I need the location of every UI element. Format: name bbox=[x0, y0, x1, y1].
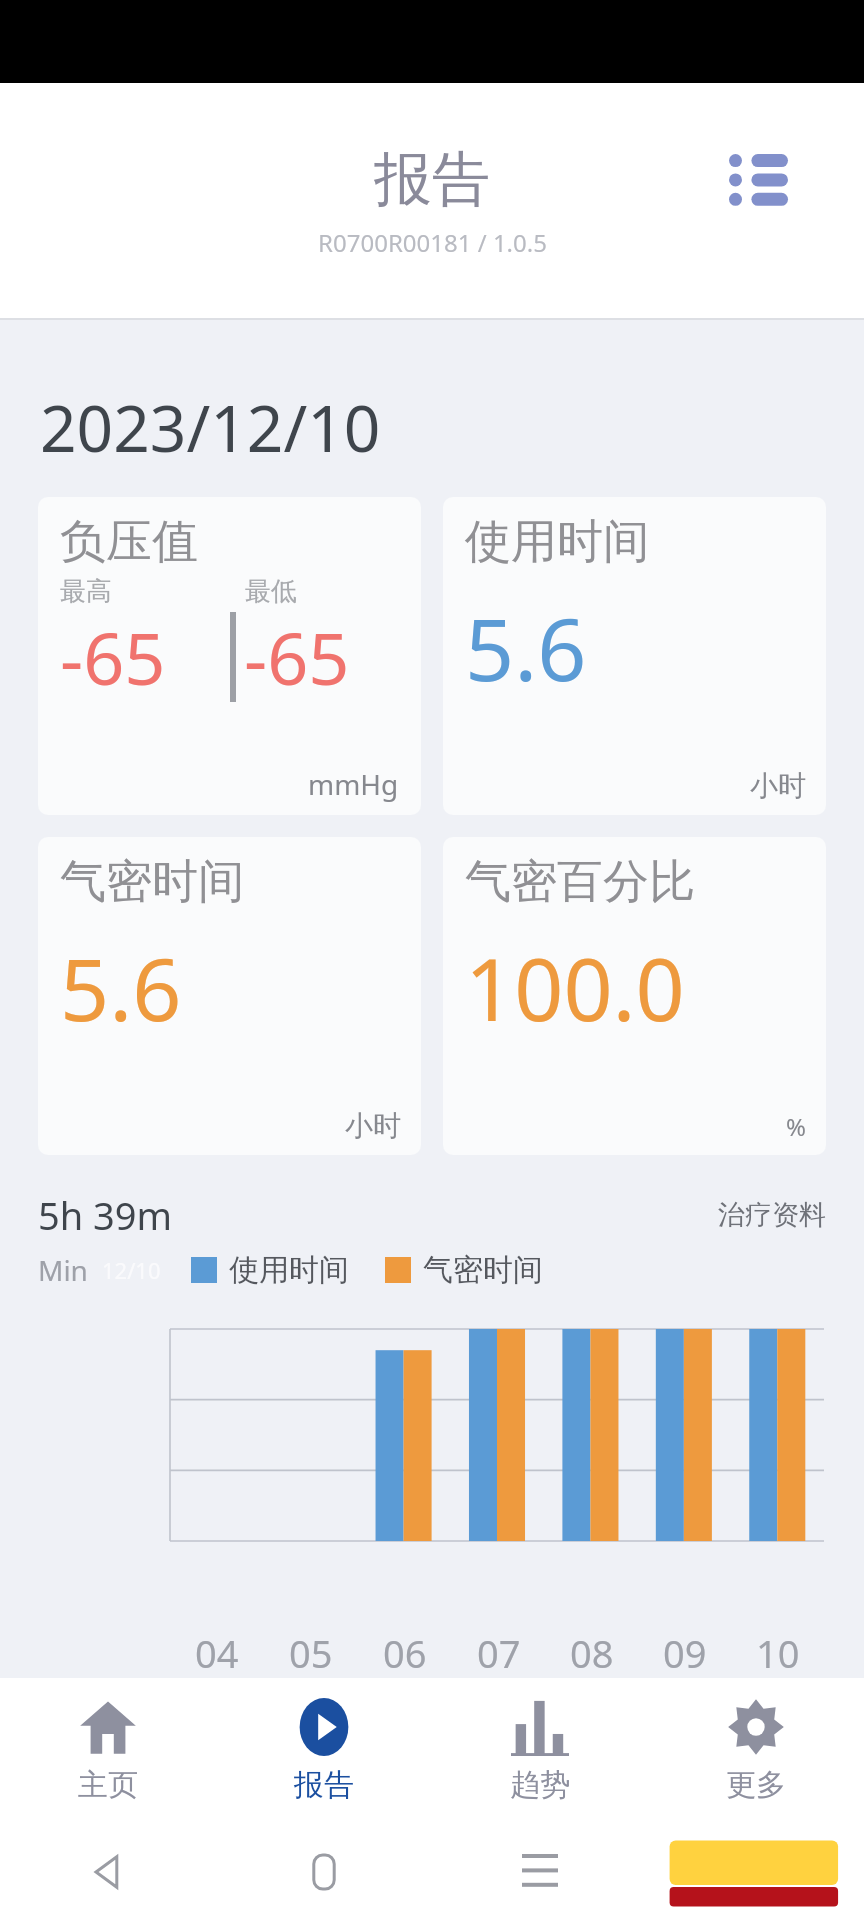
staticText: 07 bbox=[477, 1627, 521, 1678]
staticText: 5h 39m bbox=[38, 1189, 173, 1241]
button[interactable]: 气密时间 bbox=[38, 837, 421, 1155]
button[interactable]: Menu bbox=[432, 1823, 648, 1920]
staticText: 5.6 bbox=[60, 929, 182, 1046]
staticText: 趋势 bbox=[510, 1766, 570, 1804]
button[interactable]: 负压值 bbox=[38, 497, 421, 815]
staticText: 最高 bbox=[60, 575, 112, 608]
staticText: 气密时间 bbox=[423, 1251, 543, 1289]
staticText: 5.6 bbox=[465, 589, 587, 706]
staticText: 气密时间 bbox=[60, 853, 244, 911]
staticText: 2023/12/10 bbox=[40, 384, 381, 471]
staticText: R0700R00181 / 1.0.5 bbox=[318, 226, 547, 259]
staticText: 气密百分比 bbox=[465, 853, 695, 911]
staticText: 100.0 bbox=[465, 929, 685, 1046]
staticText: 报告 bbox=[294, 1766, 354, 1804]
staticText: -65 bbox=[60, 608, 166, 706]
staticText: 06 bbox=[383, 1627, 427, 1678]
staticText: 报告 bbox=[374, 143, 490, 216]
staticText: 小时 bbox=[750, 768, 806, 803]
staticText: 08 bbox=[570, 1627, 614, 1678]
staticText: 使用时间 bbox=[465, 513, 649, 571]
staticText: 04 bbox=[195, 1627, 239, 1678]
staticText: 小时 bbox=[345, 1108, 401, 1143]
button[interactable]: 气密百分比 bbox=[443, 837, 826, 1155]
staticText: 负压值 bbox=[60, 513, 198, 571]
button[interactable]: 使用时间 bbox=[443, 497, 826, 815]
button[interactable]: Home bbox=[216, 1823, 432, 1920]
staticText: 更多 bbox=[726, 1766, 786, 1804]
staticText: 主页 bbox=[78, 1766, 138, 1804]
button[interactable]: Back bbox=[0, 1823, 216, 1920]
staticText: Min bbox=[38, 1251, 88, 1289]
staticText: 10 bbox=[756, 1627, 800, 1678]
button[interactable]: 治疗资料 bbox=[718, 1198, 826, 1232]
button[interactable]: 报告 bbox=[216, 1678, 432, 1823]
staticText: 09 bbox=[663, 1627, 707, 1678]
staticText: mmHg bbox=[308, 765, 399, 803]
button[interactable]: 趋势 bbox=[432, 1678, 648, 1823]
staticText: 05 bbox=[289, 1627, 333, 1678]
staticText: 使用时间 bbox=[229, 1251, 349, 1289]
staticText: 12/10 bbox=[102, 1255, 161, 1285]
button[interactable]: 主页 bbox=[0, 1678, 216, 1823]
button[interactable]: 更多 bbox=[648, 1678, 864, 1823]
button[interactable]: List bbox=[710, 133, 806, 229]
staticText: % bbox=[786, 1110, 806, 1143]
staticText: -65 bbox=[244, 608, 350, 706]
staticText: 最低 bbox=[245, 575, 297, 608]
